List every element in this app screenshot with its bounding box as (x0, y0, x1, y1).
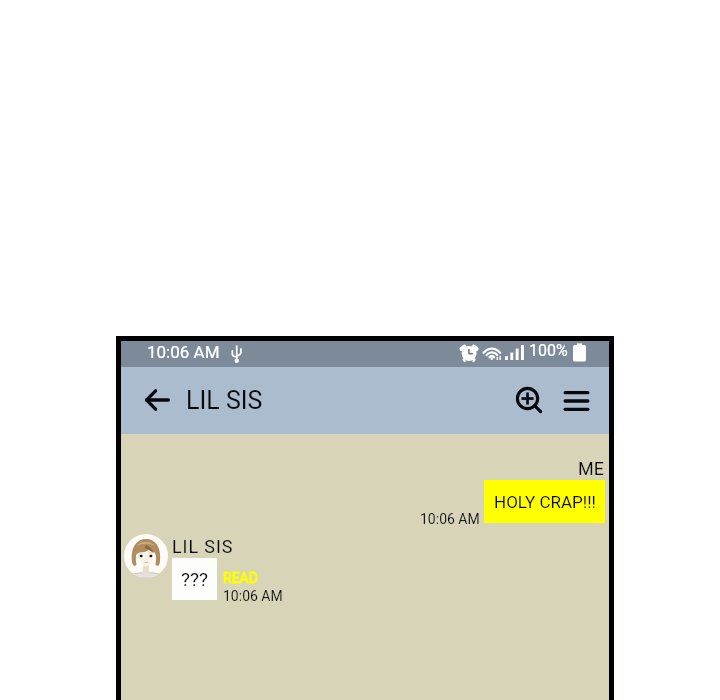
staticText: READ (223, 570, 258, 586)
staticText: 10:06 AM (223, 588, 283, 604)
button[interactable]: Menu (560, 384, 593, 417)
staticText: ME (578, 458, 604, 479)
staticText: LIL SIS (172, 536, 234, 557)
staticText: ??? (181, 568, 208, 590)
staticText: HOLY CRAP!!! (494, 492, 596, 512)
staticText: 100% (529, 341, 568, 360)
staticText: 10:06 AM (147, 342, 220, 362)
button[interactable]: Zoom in (514, 385, 547, 418)
button[interactable]: LIL SIS (186, 377, 306, 425)
button[interactable]: HOLY CRAP!!! (484, 480, 605, 523)
staticText: LIL SIS (186, 386, 263, 415)
button[interactable]: Back (135, 381, 179, 419)
button[interactable]: Lil Sis profile picture (124, 534, 168, 578)
button[interactable]: ??? (172, 558, 217, 600)
staticText: 10:06 AM (420, 511, 480, 527)
